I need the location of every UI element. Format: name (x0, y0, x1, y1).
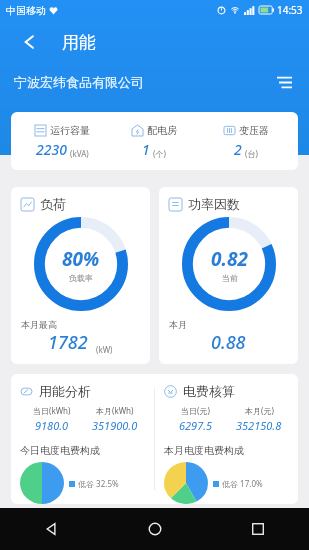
staticText: 负载率 (69, 273, 93, 283)
staticText: 今日电度电费构成 (20, 444, 100, 457)
staticText: 0.88 (211, 330, 246, 355)
staticText: 低谷 17.0% (222, 478, 263, 489)
staticText: 1782 (48, 330, 88, 355)
staticText: 351900.0 (92, 418, 138, 433)
staticText: 用能分析 (39, 383, 91, 399)
staticText: 中国移动 (6, 4, 46, 17)
staticText: 2 (234, 140, 242, 159)
staticText: 本月电度电费构成 (164, 444, 244, 457)
button[interactable]: 用能分析 (11, 374, 154, 504)
staticText: 配电房 (147, 124, 177, 137)
button[interactable]: Back (12, 24, 48, 60)
staticText: 功率因数 (188, 196, 240, 212)
button[interactable]: 负荷 (11, 187, 150, 364)
staticText: 9180.0 (35, 418, 69, 433)
staticText: 本月(kWh) (96, 405, 134, 416)
button[interactable]: 电费核算 (155, 374, 298, 504)
staticText: 本月 (169, 319, 187, 330)
button[interactable]: Menu (271, 69, 297, 95)
button[interactable]: 功率因数 (159, 187, 298, 364)
staticText: (kW) (96, 344, 113, 355)
button[interactable]: Back (0, 508, 103, 550)
button[interactable]: Home (103, 508, 206, 550)
staticText: 1 (142, 140, 150, 159)
staticText: 当日(kWh) (33, 405, 71, 416)
staticText: (kVA) (70, 148, 89, 159)
staticText: 当日(元) (181, 405, 210, 416)
staticText: 电费核算 (183, 383, 235, 399)
staticText: 运行容量 (50, 124, 90, 137)
staticText: (个) (153, 148, 166, 159)
staticText: 352150.8 (236, 418, 282, 433)
staticText: 宁波宏纬食品有限公司 (14, 74, 144, 90)
staticText: 当前 (222, 273, 238, 283)
button[interactable]: Recents (206, 508, 309, 550)
staticText: 负荷 (40, 196, 66, 212)
button[interactable]: 运行容量 (11, 112, 298, 170)
staticText: 用能 (62, 32, 96, 53)
staticText: 0.82 (211, 246, 248, 272)
staticText: 本月(元) (245, 405, 274, 416)
staticText: 本月最高 (21, 319, 57, 330)
staticText: 80% (62, 246, 100, 272)
staticText: 6297.5 (179, 418, 213, 433)
staticText: 低谷 32.5% (78, 478, 119, 489)
staticText: 变压器 (239, 124, 269, 137)
staticText: 14:53 (277, 3, 303, 17)
staticText: (台) (245, 148, 258, 159)
staticText: 2230 (36, 140, 67, 159)
